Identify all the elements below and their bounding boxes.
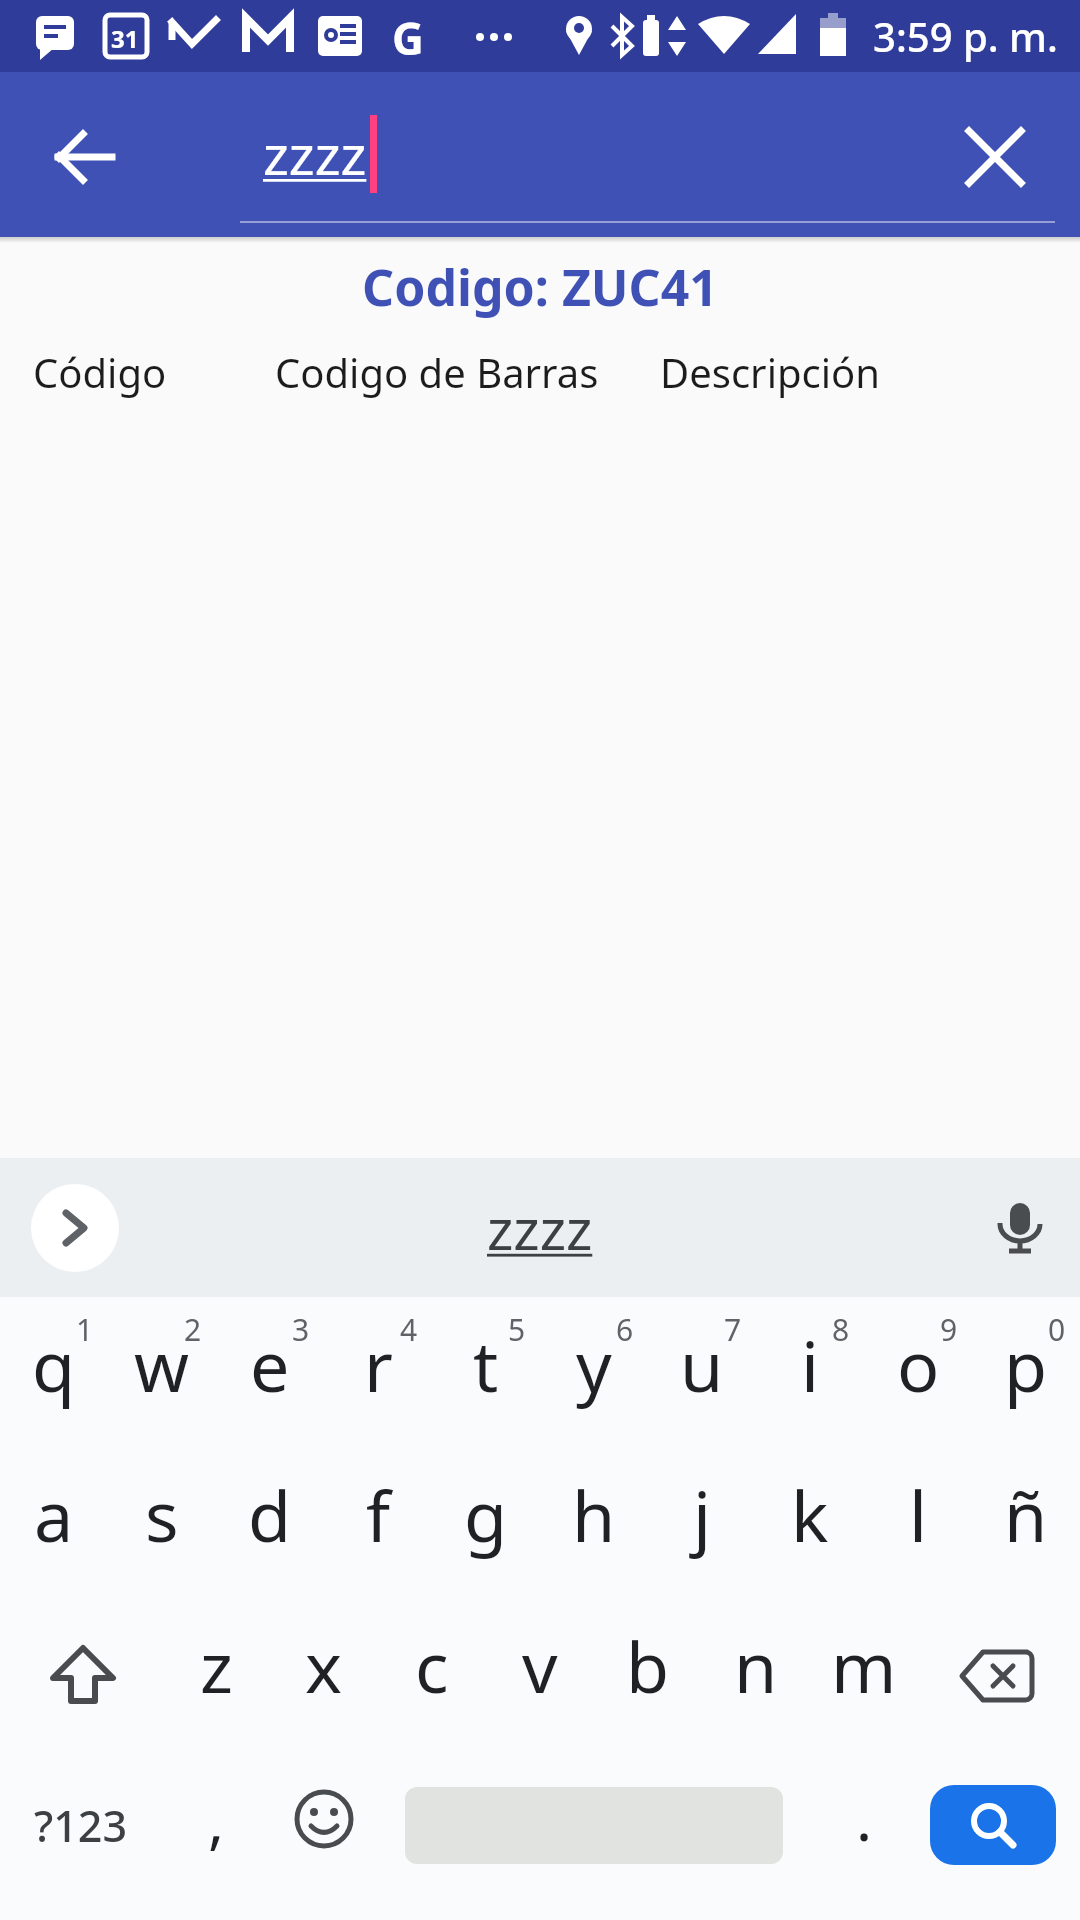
button[interactable]: ñ [972,1446,1080,1596]
staticText: k [791,1467,829,1562]
button[interactable]: c [378,1596,486,1748]
staticText: ?123 [34,1796,128,1855]
staticText: zzzz [263,116,367,191]
button[interactable]: h [540,1446,648,1596]
staticText: o [897,1317,940,1412]
staticText: 0 [1048,1309,1066,1350]
staticText: v [522,1618,558,1713]
button[interactable]: u [648,1297,756,1446]
button[interactable]: m [810,1596,918,1748]
button[interactable] [918,1596,1080,1748]
staticText: n [734,1618,778,1713]
staticText: ñ [1004,1467,1048,1562]
staticText: z [200,1618,233,1713]
staticText: 9 [940,1309,958,1350]
staticText: Codigo: ZUC41 [0,253,1080,321]
staticText: r [364,1317,393,1412]
button[interactable]: x [270,1596,378,1748]
button[interactable]: ?123 [0,1748,162,1920]
button[interactable]: n [702,1596,810,1748]
staticText: h [572,1467,616,1562]
staticText: f [366,1467,391,1562]
staticText: g [464,1467,508,1562]
staticText: Codigo de Barras [275,345,599,399]
button[interactable] [988,1196,1052,1260]
staticText: u [680,1317,724,1412]
staticText: 3 [292,1309,310,1350]
staticText: 8 [832,1309,850,1350]
staticText: 5 [508,1309,526,1350]
staticText: 31 [111,22,139,55]
button[interactable] [378,1748,810,1920]
button[interactable] [960,122,1030,192]
staticText: t [473,1317,499,1412]
button[interactable] [50,122,120,192]
staticText: b [626,1618,670,1713]
button[interactable]: d [216,1446,324,1596]
button[interactable] [270,1748,378,1920]
button[interactable]: j [648,1446,756,1596]
staticText: a [34,1467,74,1562]
staticText: e [250,1317,290,1412]
button[interactable]: v [486,1596,594,1748]
button[interactable]: t [432,1297,540,1446]
staticText: 7 [724,1309,742,1350]
button[interactable]: , [162,1748,270,1920]
staticText: w [134,1317,190,1412]
button[interactable]: s [108,1446,216,1596]
button[interactable]: i [756,1297,864,1446]
staticText: Código [33,345,167,399]
button[interactable]: p [972,1297,1080,1446]
staticText: 4 [400,1309,418,1350]
button[interactable] [31,1184,119,1272]
staticText: Descripción [660,345,880,399]
staticText: p [1004,1317,1048,1412]
staticText: i [801,1317,820,1412]
staticText: 6 [616,1309,634,1350]
button[interactable] [0,1596,162,1748]
staticText: l [909,1467,928,1562]
button[interactable]: zzzz [487,1190,593,1266]
button[interactable]: f [324,1446,432,1596]
staticText: m [831,1618,897,1713]
staticText: . [856,1777,873,1859]
staticText: d [248,1467,292,1562]
button[interactable]: y [540,1297,648,1446]
button[interactable]: b [594,1596,702,1748]
staticText: y [576,1317,612,1412]
button[interactable]: q [0,1297,108,1446]
staticText: 3:59 p. m. [873,9,1058,63]
staticText: c [415,1618,449,1713]
staticText: q [32,1317,76,1412]
staticText: , [208,1779,225,1861]
button[interactable]: l [864,1446,972,1596]
staticText: 1 [76,1309,94,1350]
button[interactable]: a [0,1446,108,1596]
staticText: G [392,8,424,68]
button[interactable]: w [108,1297,216,1446]
button[interactable] [918,1748,1080,1920]
staticText: s [145,1467,179,1562]
staticText: j [693,1467,712,1562]
button[interactable]: o [864,1297,972,1446]
button[interactable]: k [756,1446,864,1596]
button[interactable]: g [432,1446,540,1596]
staticText: x [305,1618,343,1713]
staticText: 2 [184,1309,202,1350]
button[interactable]: e [216,1297,324,1446]
button[interactable]: r [324,1297,432,1446]
button[interactable]: . [810,1748,918,1920]
button[interactable]: z [162,1596,270,1748]
